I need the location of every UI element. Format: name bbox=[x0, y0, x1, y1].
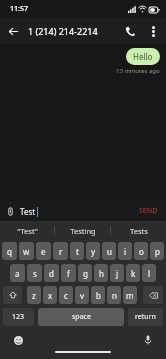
button[interactable]: space bbox=[38, 308, 124, 326]
button[interactable]: "Test" bbox=[0, 221, 54, 240]
staticText: l bbox=[148, 268, 151, 279]
button[interactable]: y bbox=[86, 242, 100, 260]
button[interactable]: x bbox=[43, 286, 57, 304]
staticText: o bbox=[139, 246, 144, 257]
staticText: x bbox=[48, 290, 53, 301]
staticText: a bbox=[15, 268, 20, 279]
button[interactable]: Hello bbox=[126, 48, 160, 65]
button[interactable]: o bbox=[134, 242, 148, 260]
staticText: g bbox=[83, 268, 88, 279]
button[interactable]: b bbox=[91, 286, 105, 304]
button[interactable]: e bbox=[36, 242, 51, 260]
staticText: z bbox=[32, 290, 36, 301]
button[interactable]: More options bbox=[142, 20, 164, 42]
staticText: w bbox=[23, 246, 30, 257]
staticText: Test bbox=[20, 206, 36, 217]
staticText: 1 (214) 214-2214 bbox=[28, 25, 118, 37]
staticText: k bbox=[131, 268, 136, 279]
staticText: return bbox=[135, 312, 156, 322]
staticText: t bbox=[76, 246, 79, 257]
staticText: "Test" bbox=[17, 226, 38, 236]
button[interactable]: i bbox=[118, 242, 132, 260]
staticText: u bbox=[107, 246, 112, 257]
button[interactable]: return bbox=[128, 308, 163, 326]
button[interactable]: v bbox=[75, 286, 89, 304]
button[interactable]: z bbox=[27, 286, 41, 304]
button[interactable]: j bbox=[110, 264, 124, 282]
staticText: p bbox=[155, 246, 160, 257]
button[interactable]: k bbox=[126, 264, 140, 282]
button[interactable]: Testing bbox=[55, 221, 110, 240]
button[interactable]: c bbox=[59, 286, 73, 304]
button[interactable]: l bbox=[142, 264, 156, 282]
staticText: d bbox=[49, 268, 54, 279]
staticText: f bbox=[67, 268, 70, 279]
staticText: n bbox=[112, 290, 117, 301]
staticText: 13 minutes ago bbox=[116, 67, 160, 75]
button[interactable]: s bbox=[27, 264, 42, 282]
staticText: q bbox=[7, 246, 12, 257]
staticText: i bbox=[124, 246, 127, 257]
button[interactable]: t bbox=[70, 242, 84, 260]
staticText: c bbox=[64, 290, 68, 301]
staticText: v bbox=[80, 290, 85, 301]
button[interactable]: u bbox=[102, 242, 116, 260]
button[interactable]: a bbox=[10, 264, 25, 282]
staticText: 11:57 bbox=[10, 4, 28, 14]
button[interactable]: Backspace bbox=[143, 286, 163, 304]
button[interactable]: Test bbox=[20, 206, 131, 217]
staticText: m bbox=[126, 290, 134, 301]
button[interactable]: f bbox=[61, 264, 76, 282]
staticText: r bbox=[59, 246, 63, 257]
button[interactable]: q bbox=[2, 242, 17, 260]
button[interactable]: h bbox=[94, 264, 108, 282]
button[interactable]: m bbox=[123, 286, 137, 304]
button[interactable]: n bbox=[107, 286, 121, 304]
button[interactable]: 123 bbox=[3, 308, 34, 326]
staticText: j bbox=[116, 268, 119, 279]
button[interactable]: p bbox=[150, 242, 164, 260]
button[interactable]: Voice input bbox=[140, 332, 156, 348]
staticText: space bbox=[72, 312, 91, 322]
button[interactable]: Call bbox=[118, 19, 142, 43]
button[interactable]: Emoji bbox=[10, 332, 26, 348]
button[interactable]: Back bbox=[0, 18, 26, 44]
staticText: Tests bbox=[130, 226, 148, 236]
staticText: s bbox=[33, 268, 37, 279]
staticText: b bbox=[96, 290, 101, 301]
staticText: 123 bbox=[12, 312, 25, 322]
button[interactable]: r bbox=[53, 242, 68, 260]
button[interactable]: Tests bbox=[111, 221, 166, 240]
button[interactable]: g bbox=[78, 264, 92, 282]
button[interactable]: w bbox=[19, 242, 34, 260]
button[interactable]: d bbox=[44, 264, 59, 282]
button[interactable]: SEND bbox=[131, 206, 166, 216]
button[interactable]: Attach bbox=[0, 201, 20, 221]
staticText: e bbox=[41, 246, 46, 257]
staticText: Testing bbox=[70, 226, 96, 236]
staticText: h bbox=[99, 268, 104, 279]
staticText: SEND bbox=[139, 206, 158, 216]
staticText: Hello bbox=[133, 51, 153, 62]
button[interactable]: Shift bbox=[3, 286, 22, 304]
staticText: y bbox=[91, 246, 96, 257]
